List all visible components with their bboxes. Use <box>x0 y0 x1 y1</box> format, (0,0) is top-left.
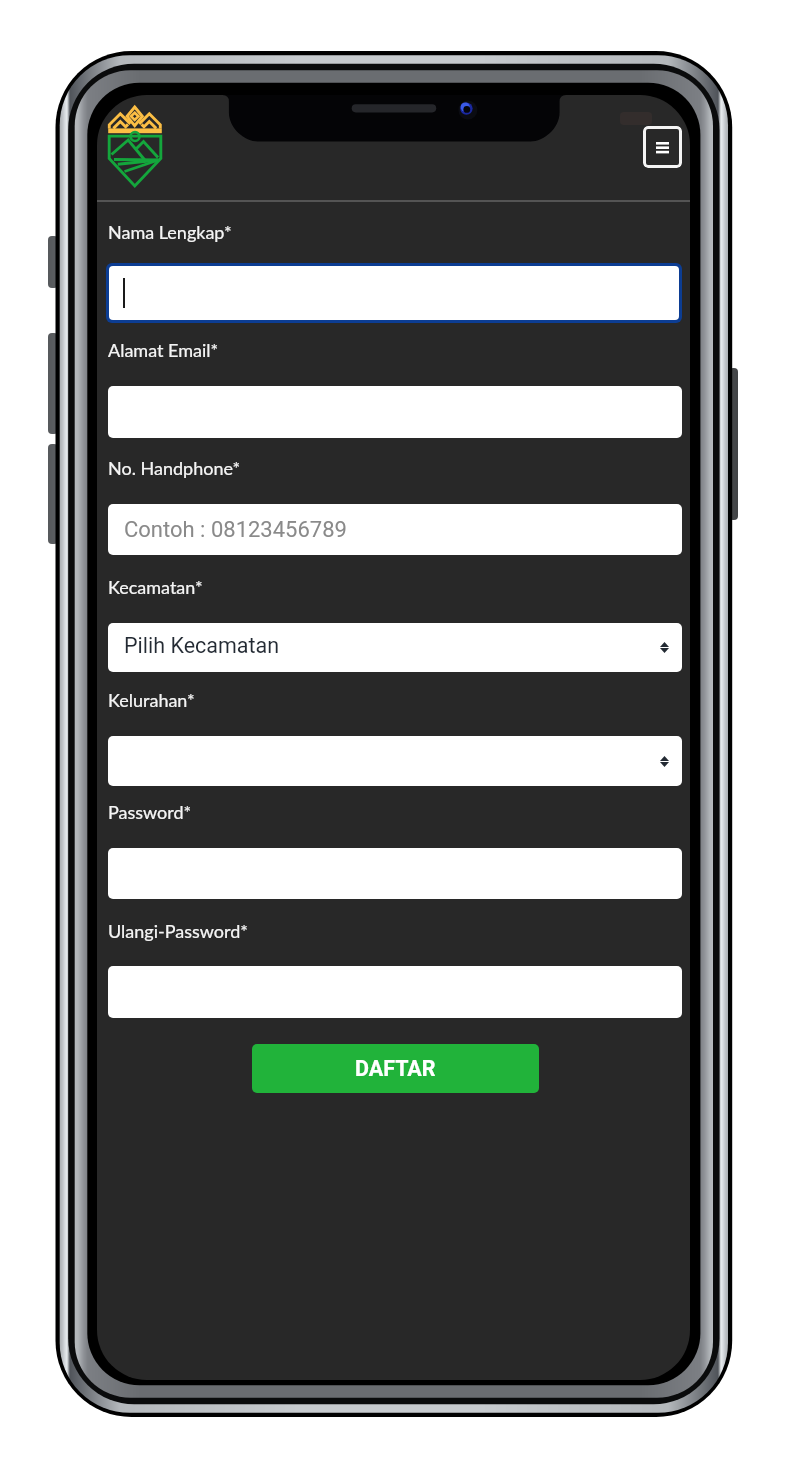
staticText: Password* <box>108 801 192 823</box>
button[interactable]: Select <box>108 736 682 786</box>
staticText: Alamat Email* <box>108 339 219 361</box>
staticText: Ulangi-Password* <box>108 920 248 942</box>
button[interactable]: Contoh : 08123456789 <box>108 504 682 555</box>
button[interactable]: Select <box>108 623 682 672</box>
staticText: Nama Lengkap* <box>108 221 232 243</box>
staticText: Kecamatan* <box>108 576 203 598</box>
button[interactable] <box>108 848 682 899</box>
button[interactable] <box>109 266 679 320</box>
staticText: Pilih Kecamatan <box>124 633 280 658</box>
staticText: Kelurahan* <box>108 689 195 711</box>
staticText: DAFTAR <box>355 1056 436 1081</box>
staticText: Contoh : 08123456789 <box>124 517 347 543</box>
button[interactable]: DAFTAR <box>252 1044 539 1093</box>
staticText: No. Handphone* <box>108 457 241 479</box>
button[interactable] <box>108 386 682 438</box>
button[interactable]: Open navigation menu <box>643 126 682 168</box>
button[interactable] <box>108 966 682 1018</box>
